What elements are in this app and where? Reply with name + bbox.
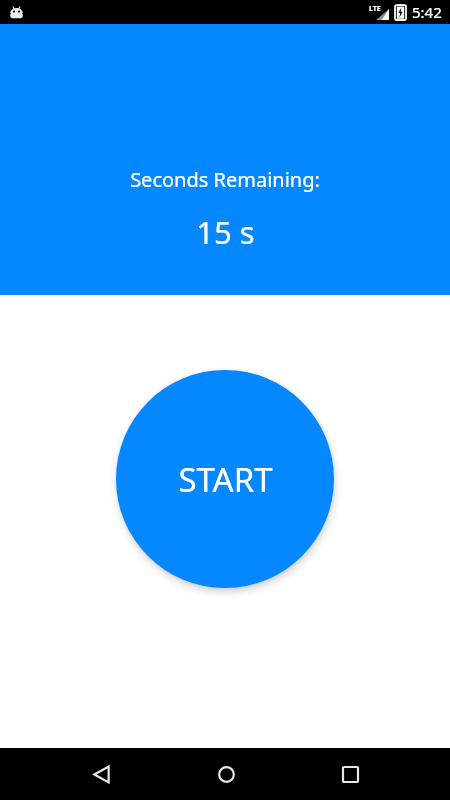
button[interactable]: Home (202, 750, 250, 798)
staticText: 5:42 (412, 2, 442, 22)
button[interactable]: Back (77, 750, 125, 798)
staticText: LTE (369, 4, 381, 14)
staticText: Seconds Remaining: (130, 166, 320, 193)
staticText: 15 s (196, 211, 255, 253)
button[interactable]: START (116, 370, 334, 588)
button[interactable]: Recent apps (326, 750, 374, 798)
staticText: START (178, 457, 273, 502)
